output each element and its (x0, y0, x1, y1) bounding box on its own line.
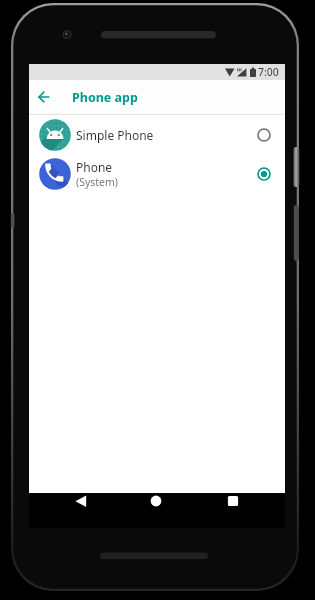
staticText: 7:00 (258, 65, 279, 79)
staticText: Phone app (72, 89, 138, 106)
staticText: Phone (76, 159, 113, 175)
staticText: (System) (76, 175, 118, 189)
button[interactable]: Phone (29, 154, 285, 193)
button[interactable] (148, 493, 164, 509)
staticText: Simple Phone (76, 127, 154, 143)
button[interactable] (29, 80, 59, 114)
button[interactable] (73, 493, 89, 509)
button[interactable] (225, 493, 241, 509)
button[interactable]: Simple Phone (29, 115, 285, 154)
